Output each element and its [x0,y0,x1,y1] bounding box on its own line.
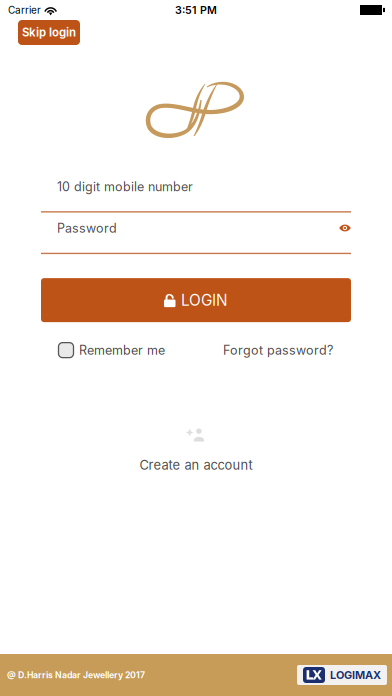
button[interactable]: Show password [339,224,351,232]
staticText: LOGIN [181,291,228,309]
button[interactable]: Create an account [139,427,252,473]
staticText: Create an account [139,457,252,473]
staticText: Skip login [22,26,76,39]
button[interactable]: Skip login [18,20,80,45]
button[interactable]: Remember me [58,342,165,358]
staticText: Remember me [79,342,165,358]
button[interactable]: Forgot password? [223,342,333,358]
staticText: Forgot password? [223,342,333,358]
button[interactable]: LOGIN [41,278,351,322]
staticText: 10 digit mobile number [57,179,193,194]
staticText: Password [57,221,117,236]
staticText: Carrier [8,4,41,16]
staticText: @ D.Harris Nadar Jewellery 2017 [7,670,145,680]
staticText: 3:51 PM [175,3,217,16]
staticText: LOGIMAX [330,668,381,682]
